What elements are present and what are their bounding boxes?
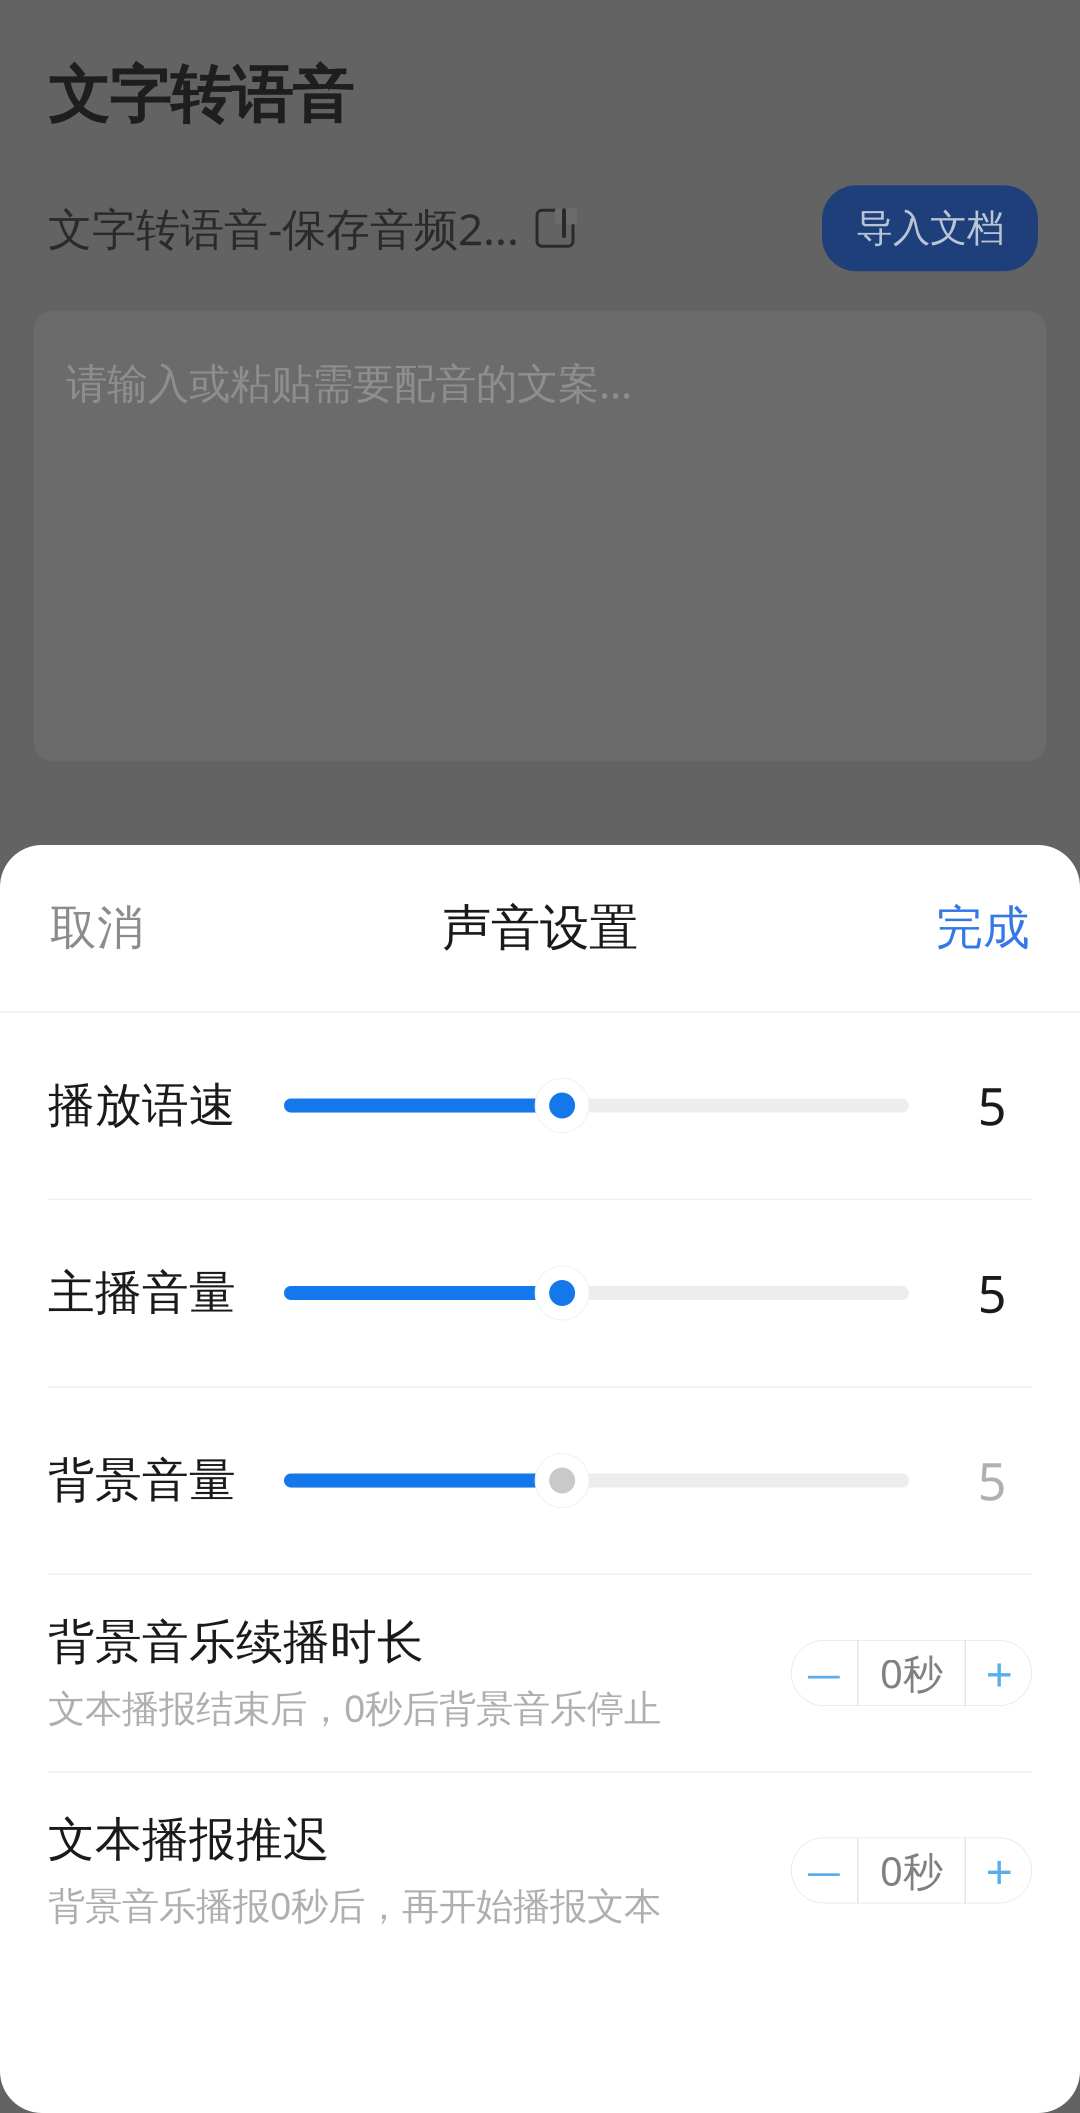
staticText: 背景音量 xyxy=(48,1452,236,1509)
staticText: 文字转语音 xyxy=(48,58,353,133)
staticText: 背景音乐续播时长 xyxy=(48,1614,424,1671)
button[interactable]: 取消 xyxy=(40,887,154,969)
staticText: 0秒 xyxy=(880,1844,943,1897)
staticText: — xyxy=(806,1650,841,1696)
staticText: 主播音量 xyxy=(48,1264,236,1322)
button[interactable]: 完成 xyxy=(926,887,1040,969)
staticText: 完成 xyxy=(936,899,1030,957)
staticText: + xyxy=(985,1641,1012,1705)
staticText: 导入文档 xyxy=(856,205,1004,251)
staticText: 文本播报推迟 xyxy=(48,1811,330,1868)
staticText: + xyxy=(985,1839,1012,1902)
staticText: 文本播报结束后，0秒后背景音乐停止 xyxy=(48,1683,661,1732)
staticText: 5 xyxy=(977,1072,1006,1139)
button[interactable]: 减少 xyxy=(791,1837,857,1903)
staticText: 0秒 xyxy=(880,1646,943,1699)
staticText: 5 xyxy=(977,1447,1006,1514)
staticText: 取消 xyxy=(50,899,144,957)
button[interactable]: 减少 xyxy=(791,1640,857,1706)
staticText: 背景音乐播报0秒后，再开始播报文本 xyxy=(48,1880,661,1930)
staticText: 文字转语音-保存音频2... xyxy=(48,199,519,257)
staticText: — xyxy=(806,1847,841,1893)
button[interactable]: 导入文档 xyxy=(822,185,1038,271)
staticText: 声音设置 xyxy=(442,898,638,958)
staticText: 播放语速 xyxy=(48,1077,236,1134)
staticText: 5 xyxy=(977,1259,1006,1327)
button[interactable]: 增加 xyxy=(966,1640,1032,1706)
staticText: 请输入或粘贴需要配音的文案... xyxy=(66,355,632,410)
button[interactable]: 增加 xyxy=(966,1837,1032,1903)
